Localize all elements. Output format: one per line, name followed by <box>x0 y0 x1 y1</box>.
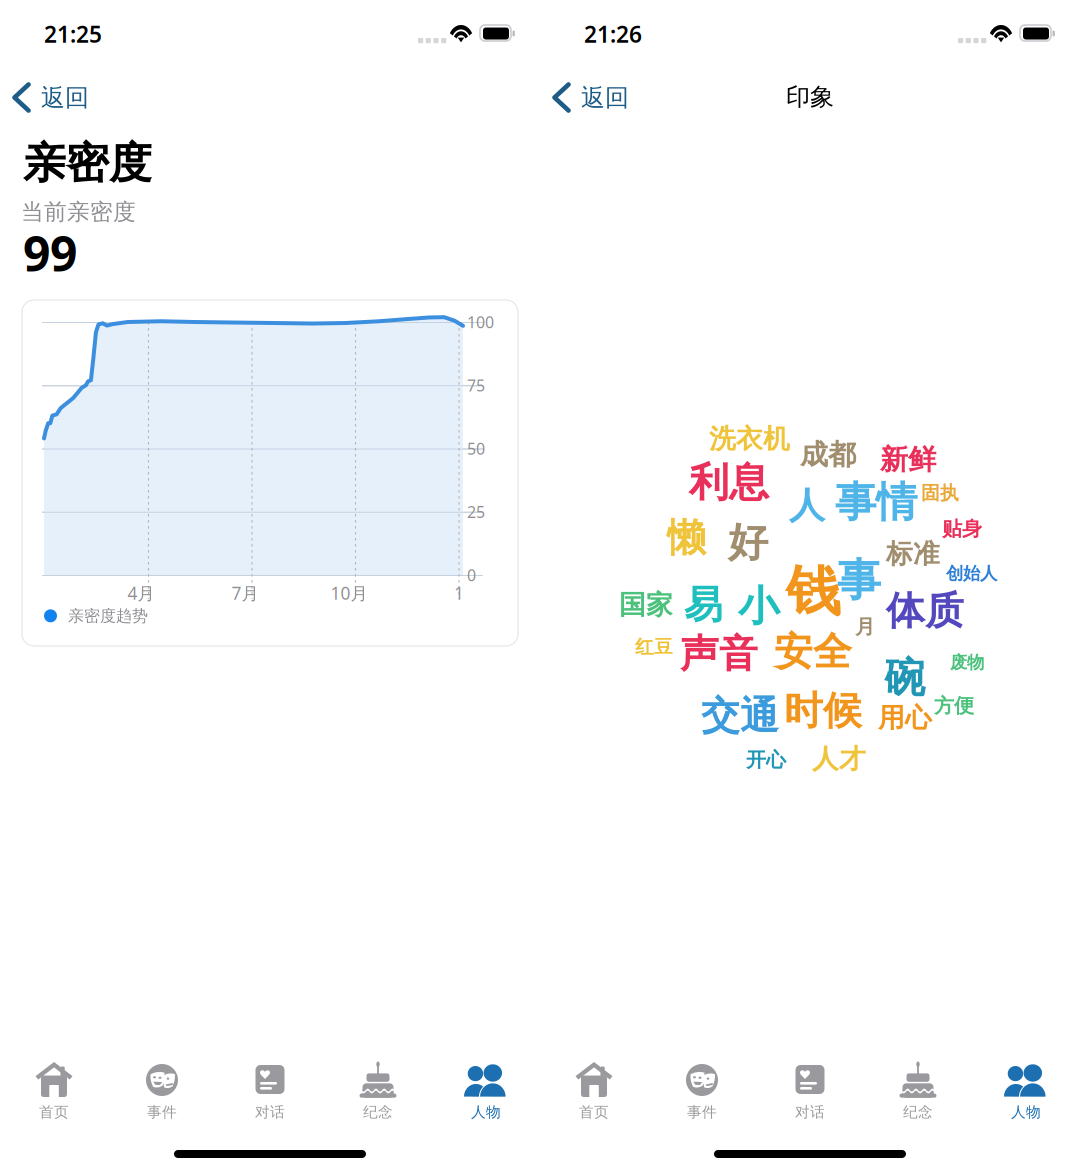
staticText: 声音 <box>680 630 758 678</box>
staticText: 21:26 <box>584 19 642 49</box>
staticText: 21:25 <box>44 19 102 49</box>
staticText: 事 <box>837 553 881 607</box>
staticText: 10月 <box>330 581 367 604</box>
staticText: 月 <box>855 614 875 639</box>
staticText: 时候 <box>784 687 862 735</box>
button[interactable]: 首页 <box>0 1060 108 1140</box>
staticText: 人物 <box>1011 1103 1041 1121</box>
staticText: 事件 <box>147 1103 177 1121</box>
staticText: 标准 <box>886 538 940 570</box>
button[interactable]: 对话 <box>216 1060 324 1140</box>
staticText: 对话 <box>795 1103 825 1121</box>
staticText: 小 <box>738 581 779 631</box>
staticText: 利息 <box>689 458 769 507</box>
staticText: 25 <box>467 501 485 522</box>
staticText: 懒 <box>667 514 706 562</box>
staticText: 50 <box>467 438 485 459</box>
staticText: 当前亲密度 <box>21 198 136 226</box>
staticText: 印象 <box>786 82 834 112</box>
staticText: 人物 <box>471 1103 501 1121</box>
staticText: 交通 <box>701 692 779 740</box>
staticText: 安全 <box>774 628 852 676</box>
staticText: 100 <box>467 311 494 333</box>
staticText: 易 <box>684 581 723 629</box>
staticText: 事情 <box>835 477 917 527</box>
staticText: 纪念 <box>363 1103 393 1121</box>
staticText: 纪念 <box>903 1103 933 1121</box>
staticText: 成都 <box>800 437 856 472</box>
staticText: 好 <box>728 518 768 567</box>
staticText: 返回 <box>41 83 89 112</box>
staticText: 人 <box>789 483 825 528</box>
button[interactable]: 人物 <box>432 1060 540 1140</box>
staticText: 红豆 <box>635 636 673 658</box>
staticText: 方便 <box>934 693 974 718</box>
button[interactable]: 返回 <box>540 66 636 118</box>
staticText: 国家 <box>619 589 673 621</box>
button[interactable]: 首页 <box>540 1060 648 1140</box>
staticText: 用心 <box>878 702 932 734</box>
staticText: 亲密度 <box>23 137 152 189</box>
staticText: 贴身 <box>942 516 982 541</box>
staticText: 返回 <box>581 83 629 112</box>
button[interactable]: 事件 <box>648 1060 756 1140</box>
staticText: 人才 <box>812 743 866 775</box>
staticText: 固执 <box>921 482 959 504</box>
staticText: 亲密度趋势 <box>68 606 148 626</box>
staticText: 钱 <box>786 558 841 625</box>
staticText: 开心 <box>746 747 786 772</box>
button[interactable]: 对话 <box>756 1060 864 1140</box>
staticText: 创始人 <box>946 563 997 584</box>
staticText: 体质 <box>886 587 964 635</box>
staticText: 首页 <box>39 1103 69 1121</box>
staticText: 0 <box>467 564 476 586</box>
staticText: 1 <box>454 581 464 604</box>
staticText: 7月 <box>231 581 258 604</box>
staticText: 事件 <box>687 1103 717 1121</box>
staticText: 99 <box>23 221 77 285</box>
button[interactable]: 纪念 <box>324 1060 432 1140</box>
button[interactable]: 返回 <box>0 66 96 118</box>
button[interactable]: 纪念 <box>864 1060 972 1140</box>
staticText: 洗衣机 <box>709 423 790 455</box>
staticText: 对话 <box>255 1103 285 1121</box>
button[interactable]: 事件 <box>108 1060 216 1140</box>
staticText: 新鲜 <box>880 442 936 477</box>
staticText: 75 <box>467 375 485 396</box>
staticText: 首页 <box>579 1103 609 1121</box>
staticText: 4月 <box>127 581 154 604</box>
staticText: 碗 <box>884 653 925 703</box>
staticText: 废物 <box>950 652 984 673</box>
button[interactable]: 人物 <box>972 1060 1080 1140</box>
